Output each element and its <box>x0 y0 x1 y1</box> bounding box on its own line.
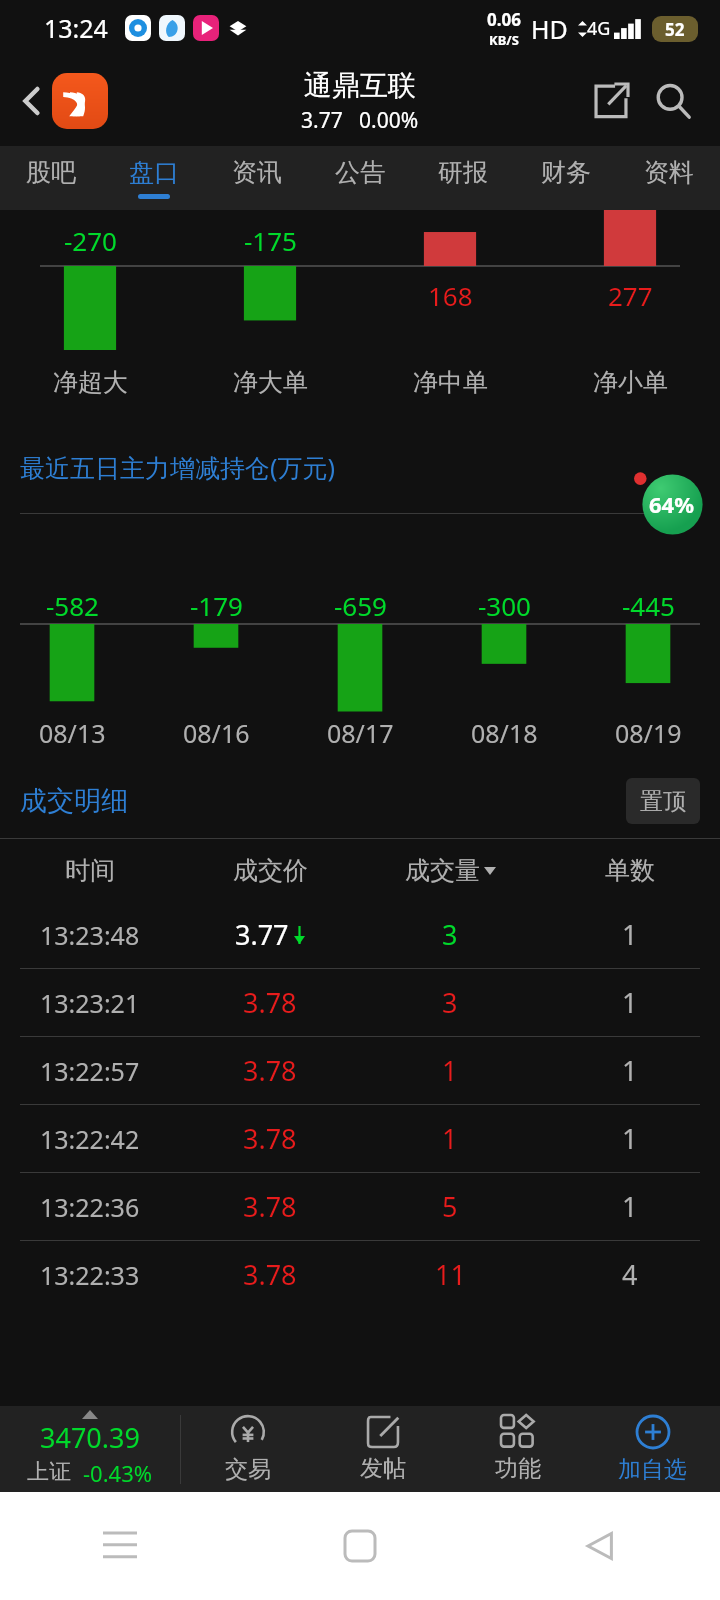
staticText: 13:24 <box>44 11 108 45</box>
button[interactable]: 盘口 <box>102 146 205 210</box>
button[interactable]: Recents <box>0 1492 240 1600</box>
staticText: 13:22:33 <box>40 1258 140 1292</box>
staticText: 3.78 <box>243 1052 297 1089</box>
button[interactable]: 13:22:42 <box>0 1105 720 1172</box>
staticText: -175 <box>244 223 297 258</box>
staticText: -582 <box>46 588 99 623</box>
staticText: 11 <box>435 1256 466 1293</box>
staticText: KB/S <box>489 31 519 49</box>
staticText: 财务 <box>541 157 591 188</box>
staticText: 3470.39 <box>40 1419 140 1456</box>
staticText: 13:22:36 <box>40 1190 140 1224</box>
staticText: 5 <box>442 1188 458 1225</box>
staticText: 时间 <box>65 855 115 886</box>
staticText: 净超大 <box>53 367 128 398</box>
button[interactable]: 资讯 <box>205 146 308 210</box>
staticText: 277 <box>608 278 653 313</box>
staticText: 0.06 <box>487 8 521 31</box>
staticText: 成交明细 <box>20 784 128 818</box>
staticText: 单数 <box>605 855 655 886</box>
staticText: 3.78 <box>243 1256 297 1293</box>
staticText: 功能 <box>495 1454 541 1483</box>
staticText: 1 <box>622 1052 638 1089</box>
staticText: -270 <box>64 223 117 258</box>
staticText: 08/16 <box>183 716 250 750</box>
button[interactable]: 资料 <box>617 146 720 210</box>
button[interactable]: Back <box>480 1492 720 1600</box>
button[interactable]: 公告 <box>308 146 411 210</box>
staticText: 净小单 <box>593 367 668 398</box>
button[interactable]: 股吧 <box>0 146 102 210</box>
staticText: 168 <box>428 278 473 313</box>
staticText: 08/18 <box>471 716 538 750</box>
button[interactable]: 13:22:57 <box>0 1037 720 1104</box>
staticText: 13:22:42 <box>40 1122 140 1156</box>
staticText: 3.78 <box>243 1188 297 1225</box>
button[interactable]: 财务 <box>514 146 617 210</box>
staticText: 上证 <box>27 1458 71 1486</box>
staticText: 52 <box>665 18 685 41</box>
button[interactable]: 3470.39 <box>0 1406 180 1492</box>
staticText: 3 <box>442 984 458 1021</box>
button[interactable]: 13:22:36 <box>0 1173 720 1240</box>
button[interactable]: 加自选 <box>585 1406 720 1492</box>
staticText: 1 <box>622 1188 638 1225</box>
button[interactable]: 功能 <box>450 1406 585 1492</box>
staticText: 成交价 <box>233 855 308 886</box>
staticText: 公告 <box>335 157 385 188</box>
staticText: 08/19 <box>615 716 682 750</box>
staticText: 3.77 0.00% <box>301 106 419 135</box>
button[interactable]: 置顶 <box>626 778 700 824</box>
staticText: 净中单 <box>413 367 488 398</box>
staticText: 成交量 <box>405 855 480 886</box>
staticText: 研报 <box>438 157 488 188</box>
staticText: -0.43% <box>83 1458 153 1488</box>
staticText: HD <box>531 12 568 46</box>
button[interactable]: Back <box>8 77 56 125</box>
staticText: 置顶 <box>640 787 686 816</box>
staticText: 4 <box>622 1256 638 1293</box>
staticText: 净大单 <box>233 367 308 398</box>
button[interactable]: App icon <box>52 73 108 129</box>
staticText: 1 <box>622 984 638 1021</box>
button[interactable]: 发帖 <box>315 1406 450 1492</box>
staticText: 3.78 <box>243 1120 297 1157</box>
staticText: -445 <box>622 588 675 623</box>
staticText: 13:23:48 <box>40 918 140 952</box>
staticText: 3.78 <box>243 984 297 1021</box>
staticText: 1 <box>442 1120 458 1157</box>
staticText: 08/13 <box>39 716 106 750</box>
staticText: 4G <box>587 16 611 41</box>
staticText: -659 <box>334 588 387 623</box>
button[interactable]: 13:23:21 <box>0 969 720 1036</box>
staticText: 资料 <box>644 157 694 188</box>
button[interactable]: 交易 <box>181 1406 315 1492</box>
button[interactable]: 研报 <box>411 146 514 210</box>
staticText: 64% <box>649 489 695 519</box>
staticText: 1 <box>622 1120 638 1157</box>
button[interactable]: 13:22:33 <box>0 1241 720 1308</box>
staticText: 加自选 <box>618 1455 687 1484</box>
staticText: 1 <box>622 916 638 953</box>
staticText: 最近五日主力增减持仓(万元) <box>20 450 336 484</box>
button[interactable]: Search <box>642 70 704 132</box>
staticText: 通鼎互联 <box>304 68 416 103</box>
staticText: 3.77 <box>235 916 289 953</box>
staticText: 13:22:57 <box>40 1054 140 1088</box>
staticText: 08/17 <box>327 716 394 750</box>
staticText: 交易 <box>225 1455 271 1484</box>
staticText: 13:23:21 <box>40 986 140 1020</box>
staticText: 3 <box>442 916 458 953</box>
staticText: 资讯 <box>232 157 282 188</box>
staticText: -300 <box>478 588 531 623</box>
staticText: -179 <box>190 588 243 623</box>
staticText: 盘口 <box>129 157 179 188</box>
staticText: 发帖 <box>360 1454 406 1483</box>
button[interactable]: Battery saver 64% <box>634 466 704 536</box>
button[interactable]: 13:23:48 <box>0 901 720 968</box>
staticText: 1 <box>442 1052 458 1089</box>
button[interactable]: Home <box>240 1492 480 1600</box>
staticText: 股吧 <box>26 157 76 188</box>
button[interactable]: Share <box>580 70 642 132</box>
